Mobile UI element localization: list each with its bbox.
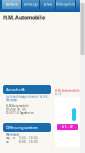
staticText: Fahrzeuge [23,3,38,6]
button[interactable]: Service [40,0,56,9]
staticText: H.M Automobile [6,104,29,108]
staticText: Gebrauchtwagenhandel & KFZ- [6,95,49,98]
staticText: H.M. Automobile [3,14,45,21]
staticText: Bildergalerie [56,3,76,6]
staticText: Werkstatt [6,98,17,102]
staticText: A 49 [55,92,62,96]
staticText: 8:00 - 16:00 [19,140,38,144]
staticText: Öffnungszeiten [6,125,38,130]
staticText: Mo - Fr [6,136,15,140]
staticText: Sa [6,140,8,144]
staticText: A 5 - W [62,125,73,129]
staticText: Bluhan Str. 40 [6,108,26,111]
staticText: D-69114 Sypatheim [6,111,33,115]
staticText: Anschrift [6,87,25,92]
staticText: Service [43,3,52,6]
staticText: Startseite [5,3,18,6]
button[interactable]: Startseite [2,0,22,9]
staticText: 9:00 - 18:00 [19,136,38,140]
staticText: Werkstatt [6,133,19,136]
button[interactable]: Bildergalerie [56,0,76,9]
button[interactable]: Fahrzeuge [22,0,40,9]
staticText: H.M. Automobile [55,89,80,92]
